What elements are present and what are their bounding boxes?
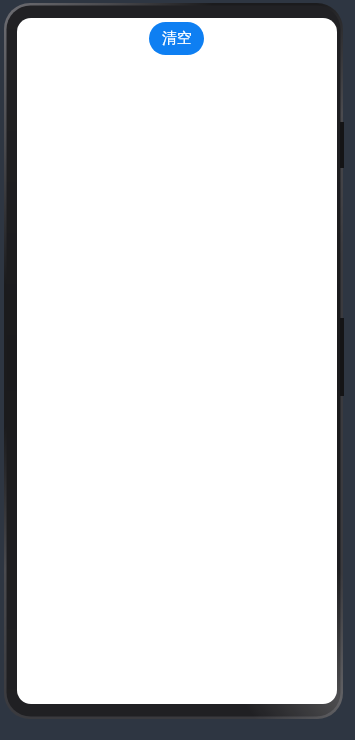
button[interactable]: 清空 (149, 22, 204, 55)
staticText: 清空 (162, 29, 192, 48)
